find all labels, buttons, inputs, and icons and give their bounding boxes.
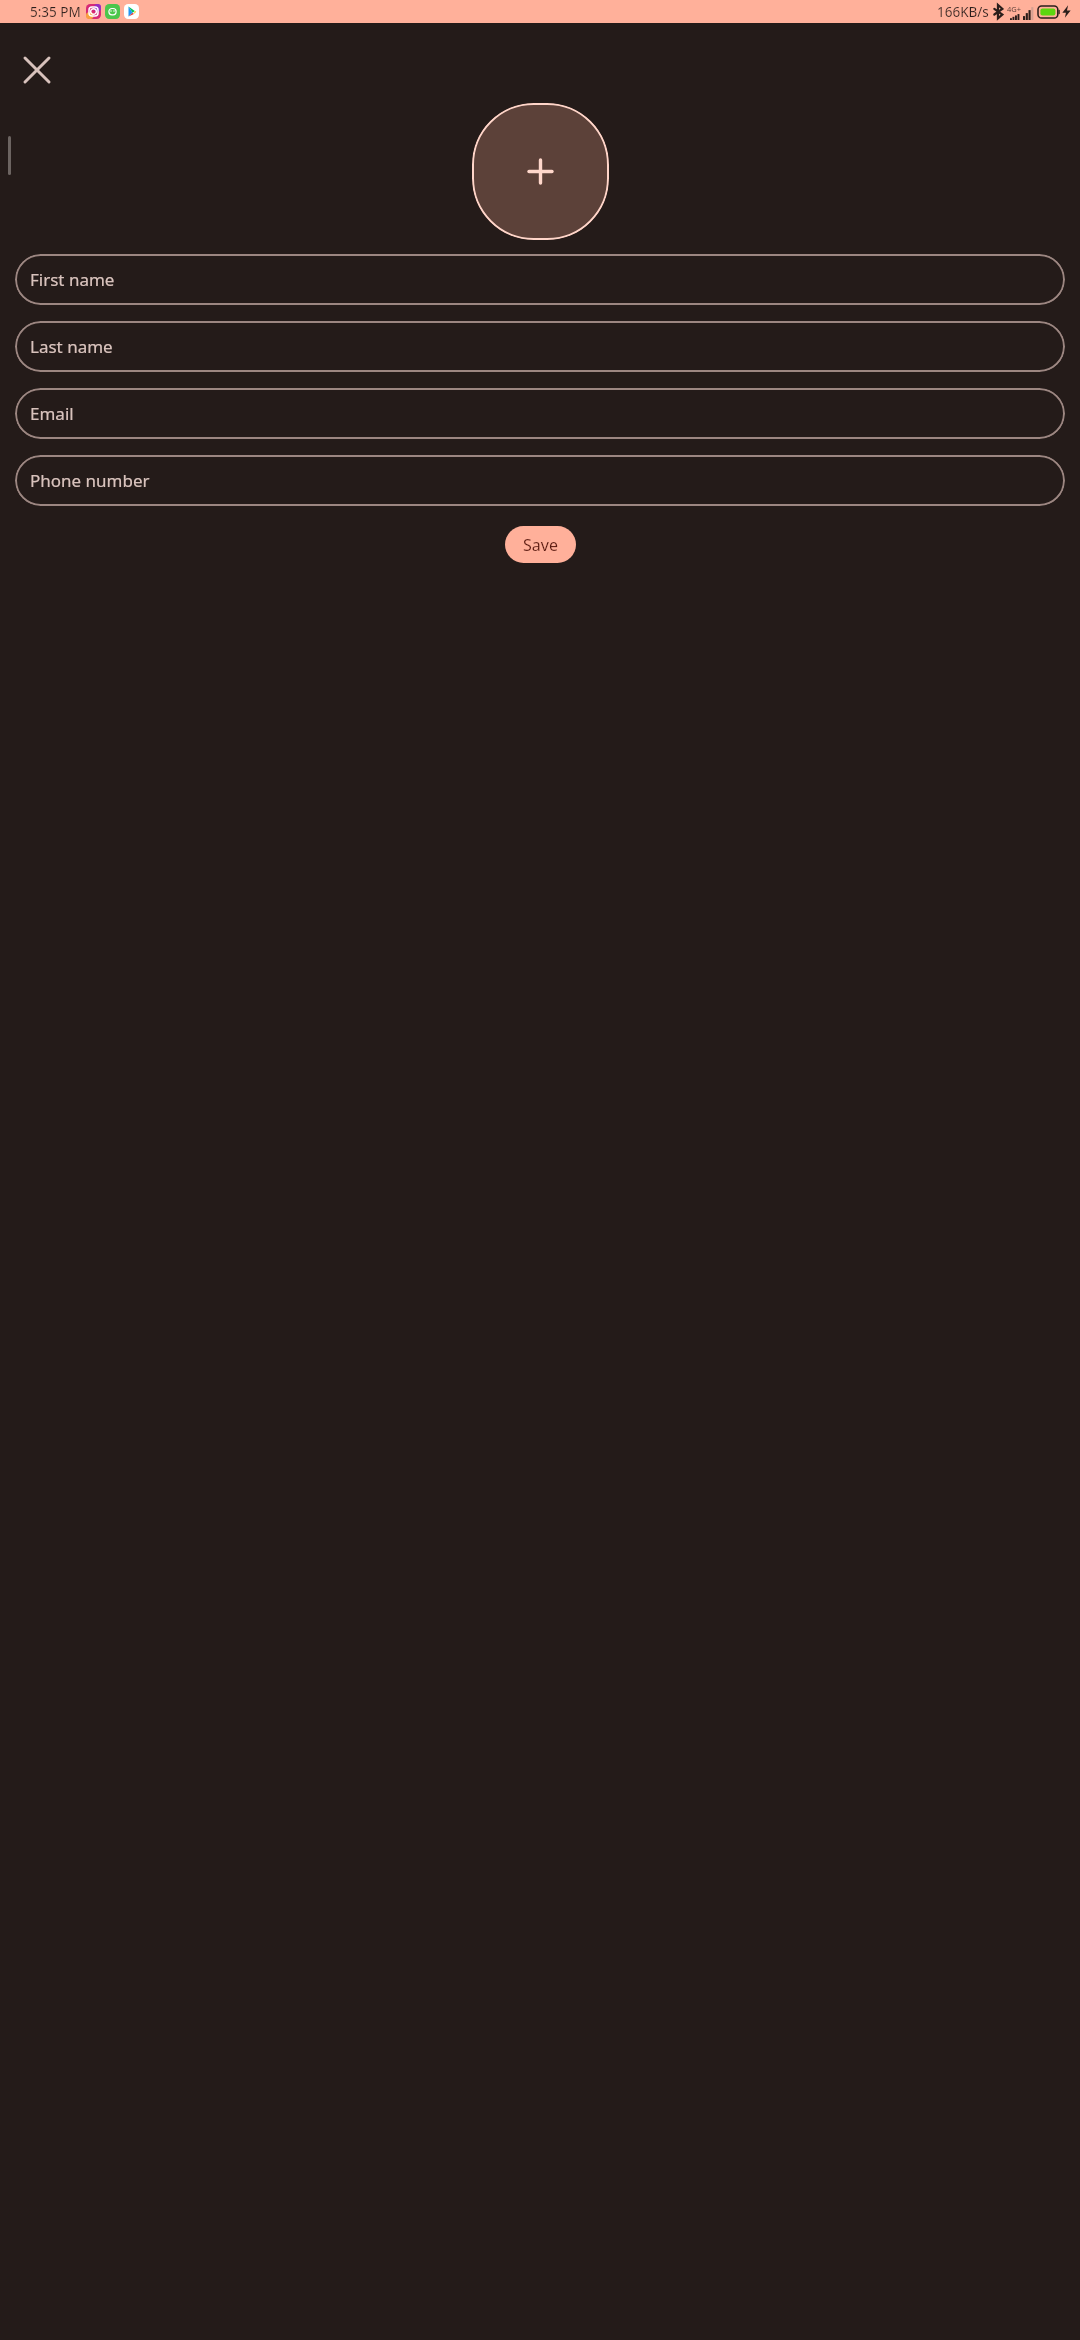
staticText: 166KB/s [937, 3, 989, 21]
staticText: 5:35 PM [30, 3, 81, 21]
button[interactable]: Phone number [15, 455, 1065, 506]
button[interactable]: Add photo [472, 103, 609, 240]
button[interactable]: Close [13, 46, 61, 94]
button[interactable]: Save [505, 526, 576, 563]
staticText: Email [30, 402, 74, 425]
button[interactable]: First name [15, 254, 1065, 305]
staticText: First name [30, 268, 115, 291]
staticText: 4G+ [1007, 4, 1022, 14]
button[interactable]: Last name [15, 321, 1065, 372]
staticText: Save [523, 534, 558, 556]
button[interactable]: Email [15, 388, 1065, 439]
staticText: Last name [30, 335, 113, 358]
staticText: Phone number [30, 469, 150, 492]
